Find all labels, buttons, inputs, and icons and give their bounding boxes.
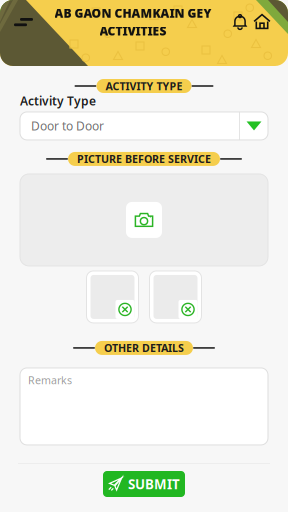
staticText: OTHER DETAILS xyxy=(104,341,184,355)
staticText: ACTIVITIES xyxy=(99,23,166,39)
staticText: Door to Door xyxy=(31,118,104,134)
button[interactable]: Menu xyxy=(0,7,37,37)
button[interactable]: Photo 2 xyxy=(149,271,201,323)
staticText: ACTIVITY TYPE xyxy=(105,79,182,93)
button[interactable]: Photo 1 xyxy=(86,271,138,323)
button[interactable]: Notifications xyxy=(229,7,251,37)
staticText: SUBMIT xyxy=(128,475,180,493)
staticText: AB GAON CHAMKAIN GEY xyxy=(54,5,211,21)
button[interactable]: Home xyxy=(251,7,288,37)
staticText: Remarks xyxy=(28,373,72,387)
staticText: PICTURE BEFORE SERVICE xyxy=(77,152,211,166)
button[interactable]: SUBMIT xyxy=(103,471,185,497)
staticText: Activity Type xyxy=(20,93,96,109)
button[interactable]: Add photo xyxy=(20,174,268,266)
